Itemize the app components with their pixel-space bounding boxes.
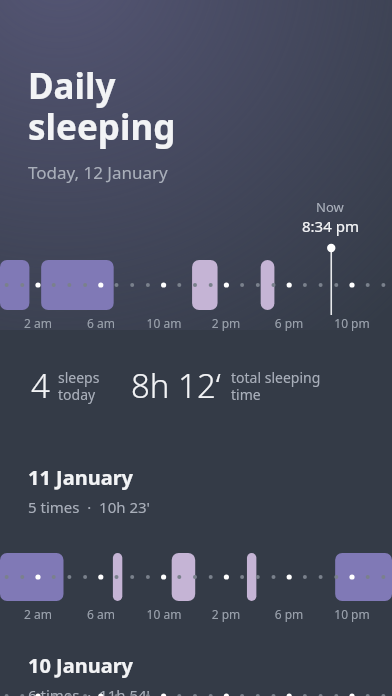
staticText: 10 pm: [322, 315, 382, 331]
staticText: 6 am: [71, 315, 131, 331]
staticText: 10 am: [134, 315, 194, 331]
staticText: 6 am: [71, 606, 131, 622]
staticText: 8h 12‘: [131, 363, 221, 408]
button[interactable]: 11 January: [0, 464, 392, 622]
staticText: 11 January: [28, 464, 134, 491]
staticText: 10 am: [134, 606, 194, 622]
staticText: 8:34 pm: [302, 216, 359, 236]
staticText: Daily sleeping: [28, 62, 176, 150]
staticText: sleeps today: [58, 368, 100, 404]
staticText: 4: [31, 363, 50, 408]
staticText: 2 pm: [196, 315, 256, 331]
staticText: 6 pm: [259, 315, 319, 331]
staticText: Now: [316, 198, 344, 216]
staticText: 2 am: [8, 315, 68, 331]
staticText: 2 pm: [196, 606, 256, 622]
staticText: 6 pm: [259, 606, 319, 622]
button[interactable]: [0, 531, 392, 601]
button[interactable]: 10 January: [0, 652, 392, 696]
staticText: 10 January: [28, 652, 134, 679]
staticText: total sleeping time: [231, 368, 321, 404]
staticText: Today, 12 January: [28, 161, 168, 184]
button[interactable]: [0, 238, 392, 310]
staticText: 2 am: [8, 606, 68, 622]
staticText: 10 pm: [322, 606, 382, 622]
staticText: 6 times · 11h 54': [28, 685, 150, 696]
staticText: 5 times · 10h 23': [28, 497, 150, 517]
